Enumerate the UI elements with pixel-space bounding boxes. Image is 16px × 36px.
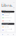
- staticText: Continue listening: [2, 22, 9, 26]
- staticText: Recently Added: [4, 13, 10, 16]
- staticText: Library: [1, 2, 12, 13]
- staticText: Playlists: [4, 26, 9, 28]
- button[interactable]: Shared with You: [2, 28, 14, 32]
- button[interactable]: Favorites: [2, 19, 14, 22]
- staticText: Downloads: [4, 17, 12, 19]
- button[interactable]: Upgrade to Pro: [2, 11, 14, 12]
- button[interactable]: Home: [0, 34, 5, 35]
- button[interactable]: Downloads: [2, 16, 14, 19]
- button[interactable]: Recently Added: [2, 13, 14, 16]
- staticText: Favorites: [4, 20, 11, 22]
- button[interactable]: Continue listening: [2, 23, 14, 25]
- button[interactable]: Search: [5, 34, 11, 35]
- staticText: Upgrade to Pro: [2, 10, 11, 13]
- staticText: Shared with You: [4, 28, 12, 32]
- button[interactable]: Playlists: [2, 25, 14, 28]
- button[interactable]: Library: [11, 34, 16, 35]
